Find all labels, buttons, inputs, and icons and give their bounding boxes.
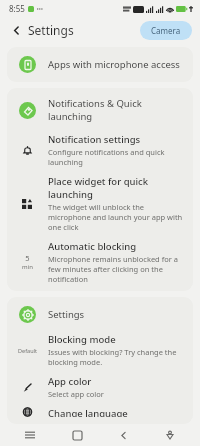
button[interactable]: Notifications & Quick launching — [7, 91, 193, 129]
button[interactable]: Change language — [7, 403, 193, 421]
button[interactable]: 5 — [7, 236, 193, 288]
staticText: Apps with microphone access — [48, 58, 180, 71]
staticText: The widget will unblock the microphone a… — [48, 202, 186, 232]
button[interactable]: Settings — [7, 300, 193, 329]
button[interactable]: Notification settings — [7, 129, 193, 171]
button[interactable]: Apps with microphone access — [7, 50, 193, 79]
staticText: Settings — [28, 22, 74, 38]
staticText: Change language — [48, 407, 128, 417]
staticText: Notifications & Quick launching — [48, 97, 186, 123]
staticText: Blocking mode — [48, 333, 116, 346]
button[interactable]: App color — [7, 371, 193, 403]
staticText: Select app color — [48, 389, 104, 399]
staticText: 5 — [25, 253, 30, 263]
button[interactable]: Back — [106, 424, 140, 446]
button[interactable]: Camera — [140, 21, 192, 40]
button[interactable]: Back — [6, 20, 26, 40]
staticText: Configure notifications and quick launch… — [48, 147, 186, 167]
staticText: min — [22, 263, 33, 271]
staticText: Issues with blocking? Try change the blo… — [48, 347, 186, 367]
staticText: Camera — [151, 25, 181, 36]
staticText: Microphone remains unblocked for a few m… — [48, 254, 186, 284]
staticText: App color — [48, 375, 92, 388]
staticText: Place widget for quick launching — [48, 175, 186, 201]
staticText: Automatic blocking — [48, 240, 137, 253]
staticText: 8:55 — [9, 3, 25, 14]
button[interactable]: Home — [60, 424, 94, 446]
button[interactable]: Menu — [13, 424, 47, 446]
button[interactable]: Place widget for quick launching — [7, 171, 193, 236]
staticText: Default — [18, 347, 37, 354]
staticText: Notification settings — [48, 133, 141, 146]
button[interactable]: Screenshot — [153, 424, 187, 446]
staticText: Settings — [48, 308, 85, 321]
button[interactable]: Default — [7, 329, 193, 371]
